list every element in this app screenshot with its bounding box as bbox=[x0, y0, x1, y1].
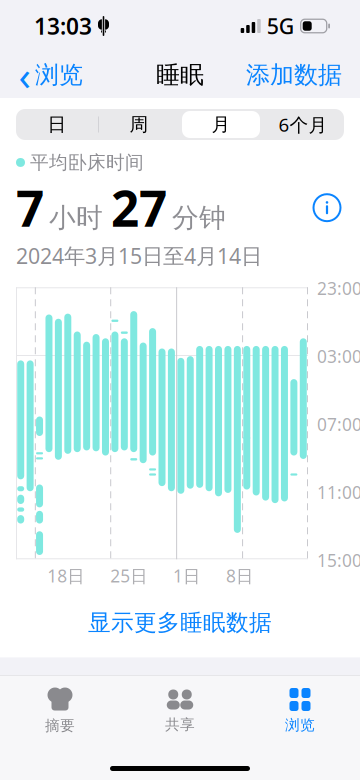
staticText: 浏览 bbox=[35, 60, 83, 90]
staticText: 小时 bbox=[49, 202, 103, 234]
staticText: 7 bbox=[16, 175, 44, 240]
staticText: 25日 bbox=[110, 564, 147, 587]
staticText: 27 bbox=[111, 175, 167, 240]
button[interactable]: ‹ bbox=[18, 54, 89, 96]
staticText: 日 bbox=[47, 113, 66, 136]
button[interactable]: 添加数据 bbox=[240, 54, 342, 96]
button[interactable]: 6个月 bbox=[262, 109, 344, 140]
staticText: 2024年3月15日至4月14日 bbox=[16, 241, 262, 270]
button[interactable]: 周 bbox=[98, 109, 180, 140]
staticText: 07:00 bbox=[317, 413, 360, 436]
button[interactable]: 关于平均卧床时间 bbox=[310, 191, 344, 225]
staticText: 添加数据 bbox=[246, 60, 342, 90]
staticText: 1日 bbox=[173, 564, 200, 587]
staticText: 分钟 bbox=[172, 202, 226, 234]
staticText: 平均卧床时间 bbox=[30, 151, 144, 174]
button[interactable]: 日 bbox=[16, 109, 98, 140]
button[interactable]: 显示更多睡眠数据 bbox=[0, 596, 360, 650]
staticText: 显示更多睡眠数据 bbox=[88, 609, 272, 637]
staticText: ‹ bbox=[18, 48, 30, 101]
button[interactable]: 月 bbox=[180, 109, 262, 140]
staticText: 15:00 bbox=[317, 549, 360, 572]
staticText: 6个月 bbox=[278, 112, 327, 137]
staticText: 睡眠 bbox=[156, 60, 204, 90]
staticText: 11:00 bbox=[317, 481, 360, 504]
staticText: 周 bbox=[129, 113, 148, 136]
staticText: 13:03 bbox=[34, 11, 92, 41]
staticText: 你的定时 bbox=[18, 685, 162, 729]
button[interactable]: 浏览 bbox=[240, 680, 360, 736]
staticText: 共享 bbox=[165, 715, 195, 733]
button[interactable]: 共享 bbox=[120, 680, 240, 735]
staticText: 月 bbox=[211, 113, 230, 136]
staticText: 23:00 bbox=[317, 277, 360, 300]
button[interactable]: 摘要 bbox=[0, 679, 120, 736]
staticText: 8日 bbox=[226, 564, 253, 587]
staticText: 浏览 bbox=[285, 716, 315, 734]
staticText: 03:00 bbox=[317, 345, 360, 368]
staticText: 摘要 bbox=[45, 716, 75, 734]
staticText: 5G bbox=[267, 12, 295, 40]
staticText: 18日 bbox=[47, 564, 84, 587]
